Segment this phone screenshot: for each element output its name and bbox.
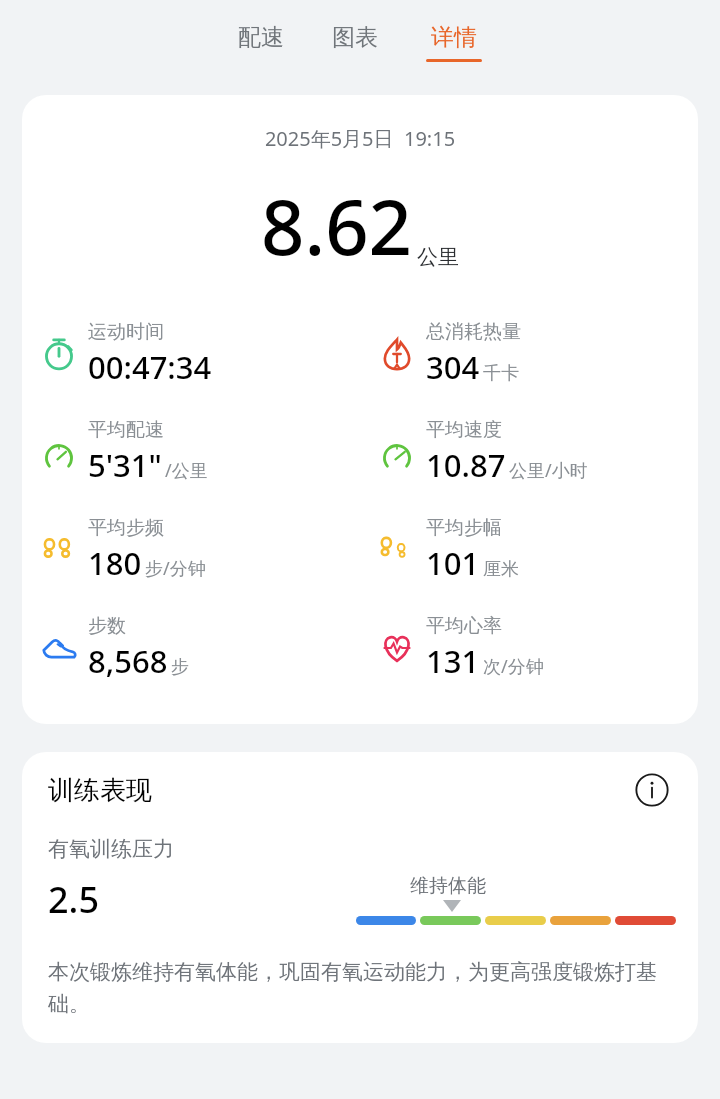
other: 平均心率	[376, 627, 418, 669]
staticText: 步数	[88, 614, 126, 638]
staticText: 平均步幅	[426, 516, 502, 540]
staticText: 步	[171, 656, 189, 679]
button[interactable]: 图表	[324, 19, 386, 66]
other: 平均配速	[38, 431, 80, 473]
other: 平均步频	[38, 529, 80, 571]
button[interactable]: 总消耗热量	[360, 320, 698, 388]
other: 总消耗热量	[376, 333, 418, 375]
staticText: /公里	[165, 458, 208, 483]
other: 平均步幅	[376, 529, 418, 571]
other: 平均速度	[376, 431, 418, 473]
other: 步数	[38, 627, 80, 669]
staticText: 千卡	[483, 362, 519, 385]
staticText: 次/分钟	[483, 654, 544, 679]
staticText: 步/分钟	[145, 556, 206, 581]
staticText: 厘米	[483, 558, 519, 581]
staticText: 公里	[417, 244, 459, 270]
staticText: 10.87	[426, 444, 506, 486]
staticText: 总消耗热量	[426, 320, 521, 344]
staticText: 304	[426, 346, 480, 388]
button[interactable]: 步数	[22, 614, 360, 682]
staticText: 维持体能	[410, 874, 486, 898]
staticText: 图表	[332, 23, 378, 52]
staticText: 180	[88, 542, 142, 584]
staticText: 有氧训练压力	[48, 836, 174, 862]
staticText: 5'31"	[88, 444, 162, 486]
staticText: 8.62	[261, 174, 413, 278]
button[interactable]: 平均步频	[22, 516, 360, 584]
staticText: 训练表现	[48, 774, 152, 807]
button[interactable]: 运动时间	[22, 320, 360, 388]
staticText: 平均心率	[426, 614, 502, 638]
button[interactable]: 配速	[230, 19, 292, 66]
other: 运动时间	[38, 333, 80, 375]
staticText: 101	[426, 542, 480, 584]
staticText: 8,568	[88, 640, 168, 682]
button[interactable]: 详情	[418, 19, 490, 66]
button[interactable]: 平均步幅	[360, 516, 698, 584]
button[interactable]: 说明	[632, 770, 672, 810]
button[interactable]: 平均速度	[360, 418, 698, 486]
staticText: 平均步频	[88, 516, 164, 540]
staticText: 00:47:34	[88, 346, 212, 388]
staticText: 2.5	[48, 875, 99, 924]
staticText: 公里/小时	[509, 458, 588, 483]
staticText: 131	[426, 640, 480, 682]
staticText: 配速	[238, 23, 284, 52]
staticText: 平均配速	[88, 418, 164, 442]
staticText: 2025年5月5日 19:15	[22, 125, 698, 152]
button[interactable]: 平均配速	[22, 418, 360, 486]
staticText: 运动时间	[88, 320, 164, 344]
button[interactable]: 平均心率	[360, 614, 698, 682]
staticText: 详情	[431, 23, 477, 52]
staticText: 平均速度	[426, 418, 502, 442]
staticText: 本次锻炼维持有氧体能，巩固有氧运动能力，为更高强度锻炼打基础。	[48, 959, 672, 1017]
